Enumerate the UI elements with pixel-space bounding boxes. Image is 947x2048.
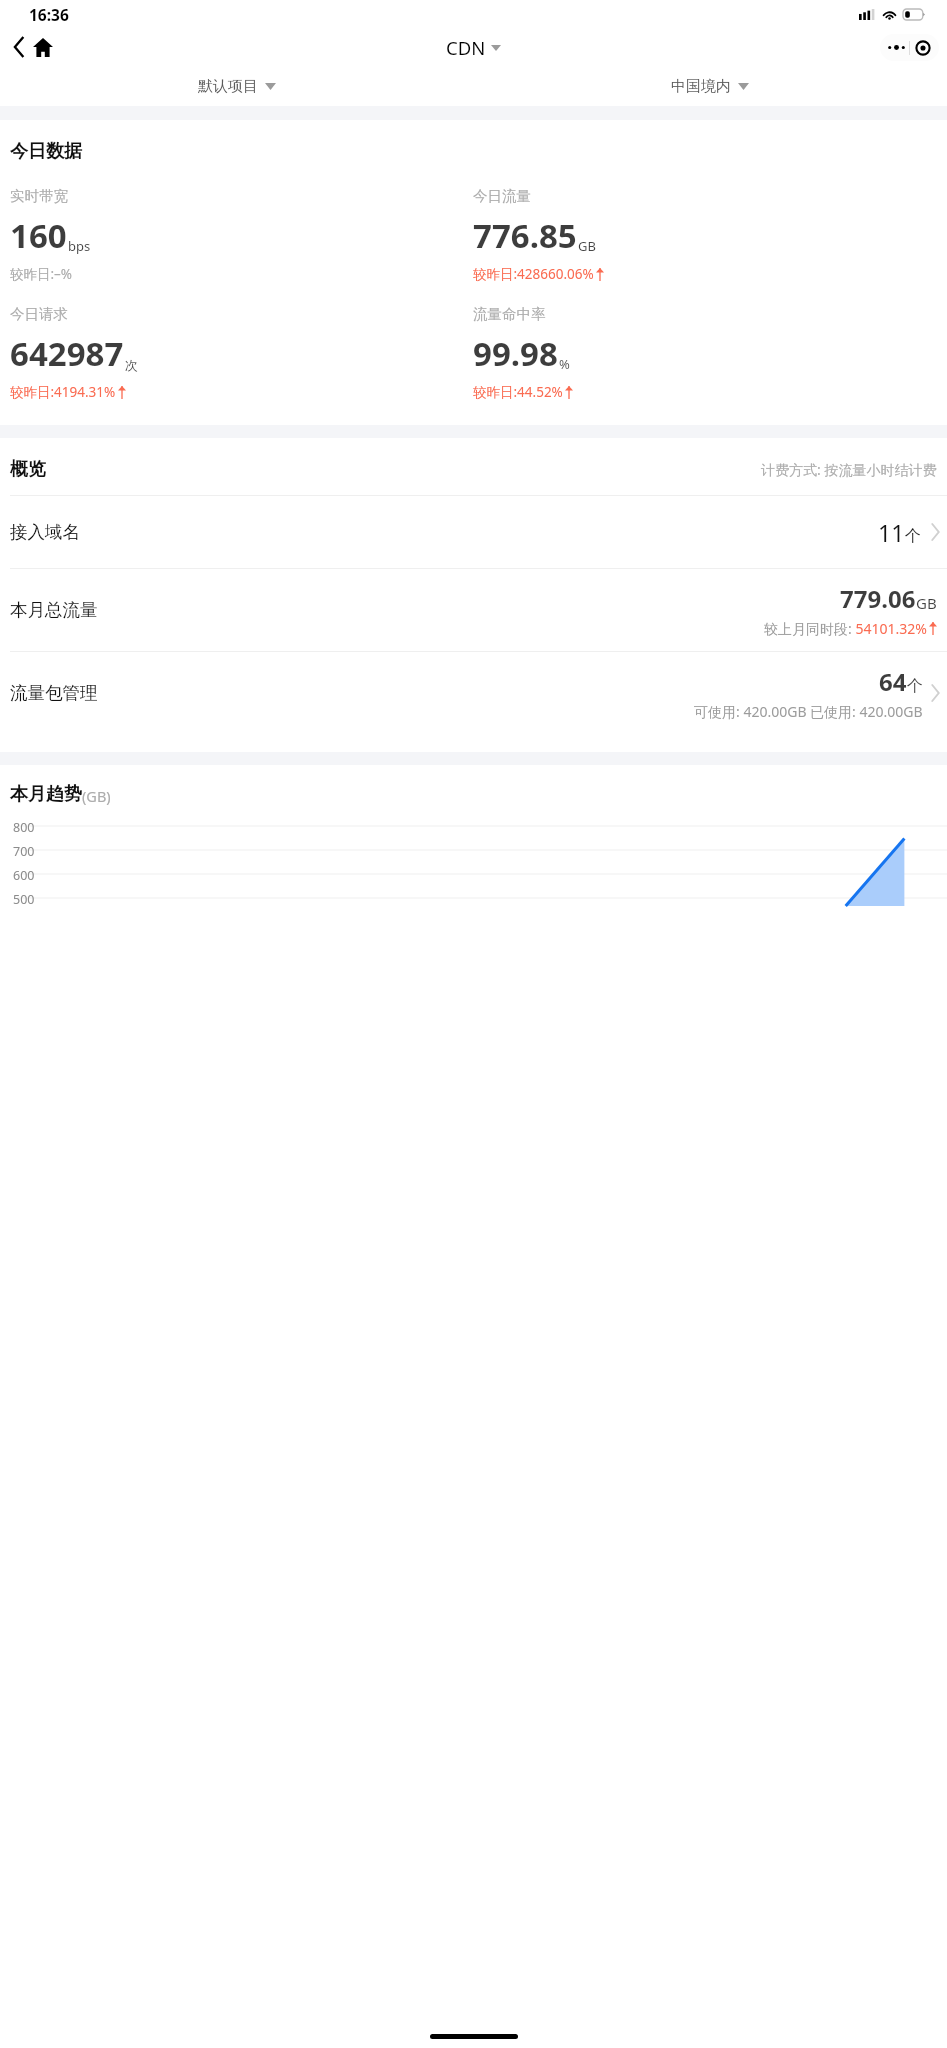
staticText: 500 [13, 891, 35, 908]
button[interactable]: 默认项目 [192, 73, 282, 100]
staticText: 实时带宽 [10, 187, 68, 205]
staticText: 64 [879, 665, 907, 698]
button[interactable]: 中国境内 [665, 73, 755, 100]
staticText: 99.98 [473, 331, 558, 376]
staticText: 779.06 [840, 582, 916, 615]
staticText: 接入域名 [10, 521, 80, 543]
staticText: 16:36 [29, 4, 69, 25]
staticText: 默认项目 [198, 77, 258, 96]
staticText: 11 [878, 517, 905, 548]
staticText: 次 [125, 357, 138, 373]
staticText: 较昨日:–% [10, 265, 73, 283]
staticText: 160 [10, 213, 67, 258]
staticText: 较昨日:44.52% [473, 383, 563, 401]
staticText: 今日流量 [473, 187, 531, 205]
staticText: CDN [446, 35, 486, 60]
staticText: bps [68, 237, 91, 255]
staticText: 中国境内 [671, 77, 731, 96]
staticText: 概览 [10, 458, 46, 481]
button[interactable]: 本月总流量 [0, 569, 947, 651]
staticText: 本月趋势 [10, 783, 82, 806]
button[interactable]: Mini program menu [880, 34, 939, 61]
staticText: 流量命中率 [473, 305, 546, 323]
staticText: 个 [907, 676, 923, 696]
staticText: 本月总流量 [10, 599, 98, 621]
staticText: 今日数据 [10, 140, 82, 163]
staticText: 776.85 [473, 213, 577, 258]
staticText: 今日请求 [10, 305, 68, 323]
staticText: 可使用: 420.00GB 已使用: 420.00GB [694, 702, 923, 721]
staticText: 642987 [10, 331, 124, 376]
staticText: 较上月同时段: 54101.32% [764, 619, 927, 638]
staticText: 较昨日:4194.31% [10, 383, 116, 401]
staticText: 700 [13, 843, 35, 860]
staticText: 流量包管理 [10, 682, 98, 704]
staticText: 800 [13, 819, 35, 836]
button[interactable]: CDN [446, 35, 501, 60]
staticText: % [559, 355, 570, 373]
staticText: 较昨日:428660.06% [473, 265, 594, 283]
staticText: 600 [13, 867, 35, 884]
button[interactable]: 接入域名 [0, 496, 947, 568]
staticText: (GB) [82, 786, 111, 806]
staticText: GB [578, 237, 596, 255]
button[interactable]: 流量包管理 [0, 652, 947, 734]
staticText: 计费方式: 按流量小时结计费 [761, 460, 937, 479]
staticText: 个 [905, 526, 921, 546]
button[interactable]: Home [28, 32, 58, 62]
staticText: GB [916, 593, 937, 613]
button[interactable]: Back [5, 33, 33, 61]
